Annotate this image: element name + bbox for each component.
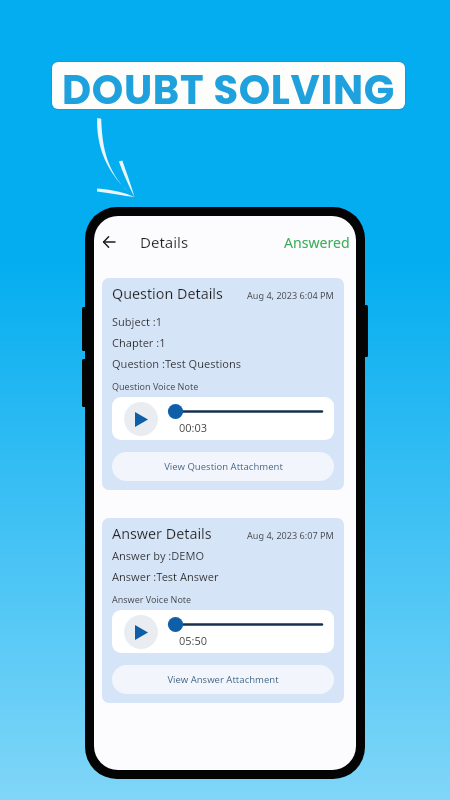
staticText: View Answer Attachment (167, 673, 279, 686)
staticText: 00:03 (179, 420, 208, 435)
staticText: DOUBT SOLVING (62, 62, 395, 109)
button[interactable]: Play (124, 402, 158, 436)
staticText: 05:50 (179, 633, 208, 648)
staticText: Aug 4, 2023 6:07 PM (247, 529, 334, 541)
button[interactable]: Answered (280, 230, 354, 255)
button[interactable]: Play (124, 615, 158, 649)
staticText: Answer :Test Answer (112, 569, 219, 584)
staticText: Aug 4, 2023 6:04 PM (247, 289, 334, 301)
staticText: Answer by :DEMO (112, 548, 205, 563)
staticText: Question Details (112, 284, 223, 303)
button[interactable]: View Answer Attachment (112, 665, 334, 694)
staticText: Question Voice Note (112, 380, 199, 392)
staticText: Answer Voice Note (112, 593, 192, 605)
staticText: Chapter :1 (112, 335, 166, 350)
staticText: View Question Attachment (164, 460, 283, 473)
button[interactable]: View Question Attachment (112, 452, 334, 481)
staticText: Subject :1 (112, 314, 162, 329)
staticText: Answer Details (112, 524, 212, 543)
staticText: Answered (284, 233, 350, 252)
button[interactable]: Back (97, 230, 121, 254)
staticText: Details (140, 232, 189, 252)
staticText: Question :Test Questions (112, 356, 241, 371)
